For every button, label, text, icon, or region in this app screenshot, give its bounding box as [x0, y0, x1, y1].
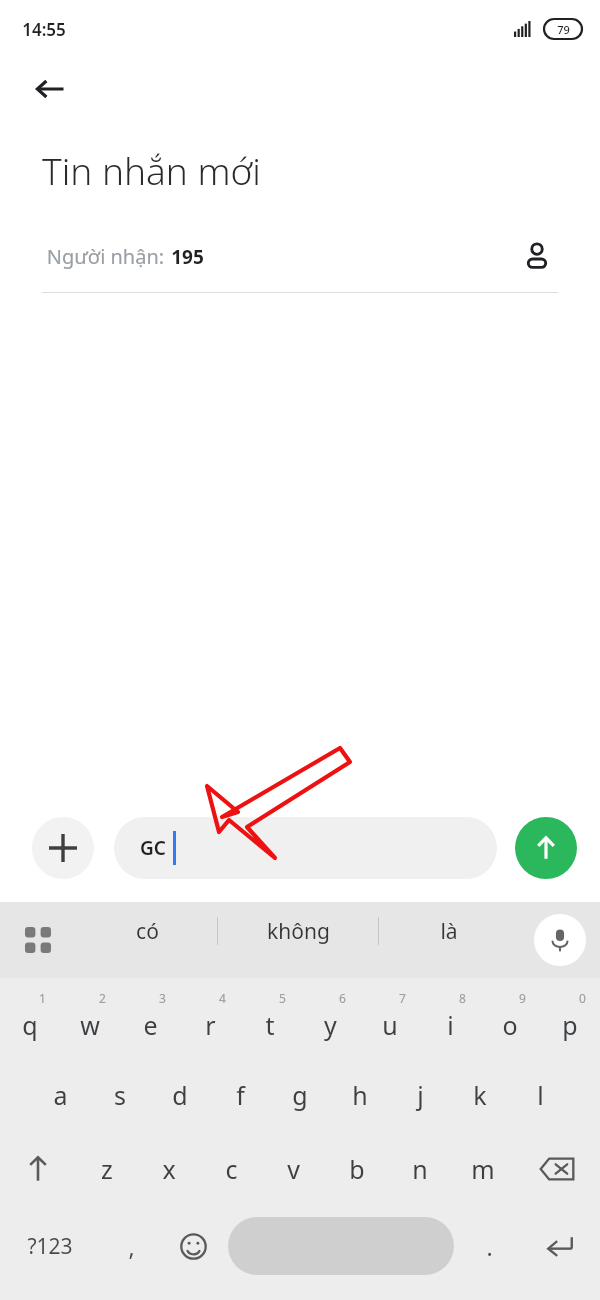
staticText: Tin nhắn mới: [42, 145, 261, 195]
staticText: j: [417, 1078, 424, 1112]
staticText: m: [471, 1152, 495, 1186]
button[interactable]: Enter: [520, 1206, 600, 1286]
staticText: có: [136, 917, 159, 946]
staticText: 8: [459, 990, 466, 1006]
button[interactable]: Shift: [0, 1132, 76, 1206]
staticText: f: [236, 1078, 245, 1112]
button[interactable]: e: [120, 984, 180, 1058]
button[interactable]: Add attachment: [32, 817, 94, 879]
button[interactable]: ,: [100, 1206, 162, 1286]
staticText: Người nhận:: [44, 243, 167, 270]
staticText: a: [53, 1078, 68, 1112]
staticText: 3: [159, 990, 166, 1006]
button[interactable]: f: [210, 1058, 270, 1132]
button[interactable]: t: [240, 984, 300, 1058]
staticText: p: [562, 1008, 578, 1042]
staticText: .: [486, 1231, 493, 1262]
staticText: 7: [399, 990, 406, 1006]
staticText: ,: [128, 1231, 135, 1262]
button[interactable]: Keyboard options: [14, 916, 62, 964]
button[interactable]: Voice input: [534, 914, 586, 966]
staticText: i: [447, 1008, 454, 1042]
staticText: c: [225, 1152, 238, 1186]
button[interactable]: w: [60, 984, 120, 1058]
staticText: 5: [279, 990, 286, 1006]
button[interactable]: Space: [228, 1217, 454, 1275]
staticText: e: [143, 1008, 158, 1042]
staticText: là: [440, 917, 458, 946]
staticText: 2: [99, 990, 106, 1006]
button[interactable]: ?123: [0, 1206, 100, 1286]
staticText: v: [287, 1152, 300, 1186]
button[interactable]: r: [180, 984, 240, 1058]
staticText: 0: [579, 990, 586, 1006]
staticText: t: [265, 1008, 275, 1042]
staticText: g: [292, 1078, 308, 1112]
button[interactable]: n: [388, 1132, 451, 1206]
button[interactable]: s: [90, 1058, 150, 1132]
staticText: k: [473, 1078, 487, 1112]
button[interactable]: p: [540, 984, 600, 1058]
button[interactable]: l: [510, 1058, 570, 1132]
staticText: w: [80, 1008, 100, 1042]
button[interactable]: u: [360, 984, 420, 1058]
button[interactable]: Back: [26, 65, 74, 113]
button[interactable]: j: [390, 1058, 450, 1132]
staticText: 79: [557, 22, 570, 37]
button[interactable]: không: [218, 902, 378, 960]
button[interactable]: g: [270, 1058, 330, 1132]
staticText: o: [502, 1008, 518, 1042]
staticText: l: [537, 1078, 544, 1112]
button[interactable]: y: [300, 984, 360, 1058]
staticText: b: [349, 1152, 365, 1186]
button[interactable]: Choose contact: [514, 233, 560, 279]
button[interactable]: Người nhận:: [0, 220, 600, 292]
staticText: 1: [39, 990, 46, 1006]
staticText: 4: [219, 990, 226, 1006]
staticText: 6: [339, 990, 346, 1006]
button[interactable]: i: [420, 984, 480, 1058]
staticText: u: [382, 1008, 398, 1042]
button[interactable]: GC: [114, 817, 497, 879]
button[interactable]: Backspace: [514, 1132, 600, 1206]
staticText: z: [101, 1152, 113, 1186]
staticText: s: [114, 1078, 126, 1112]
button[interactable]: o: [480, 984, 540, 1058]
button[interactable]: v: [262, 1132, 325, 1206]
button[interactable]: .: [458, 1206, 520, 1286]
button[interactable]: k: [450, 1058, 510, 1132]
button[interactable]: q: [0, 984, 60, 1058]
staticText: q: [22, 1008, 38, 1042]
staticText: h: [352, 1078, 368, 1112]
staticText: x: [162, 1152, 176, 1186]
staticText: không: [267, 917, 330, 946]
button[interactable]: b: [325, 1132, 388, 1206]
staticText: 14:55: [22, 18, 66, 41]
button[interactable]: Emoji: [162, 1206, 224, 1286]
staticText: r: [205, 1008, 216, 1042]
button[interactable]: là: [379, 902, 518, 960]
button[interactable]: h: [330, 1058, 390, 1132]
button[interactable]: Send: [515, 817, 577, 879]
button[interactable]: có: [78, 902, 217, 960]
staticText: ?123: [27, 1232, 73, 1261]
button[interactable]: m: [451, 1132, 514, 1206]
staticText: 9: [519, 990, 526, 1006]
button[interactable]: x: [138, 1132, 200, 1206]
staticText: n: [412, 1152, 428, 1186]
button[interactable]: d: [150, 1058, 210, 1132]
staticText: d: [172, 1078, 188, 1112]
staticText: 195: [171, 244, 204, 270]
staticText: y: [324, 1008, 337, 1042]
staticText: GC: [140, 835, 166, 861]
button[interactable]: c: [200, 1132, 262, 1206]
button[interactable]: a: [30, 1058, 90, 1132]
button[interactable]: z: [76, 1132, 138, 1206]
